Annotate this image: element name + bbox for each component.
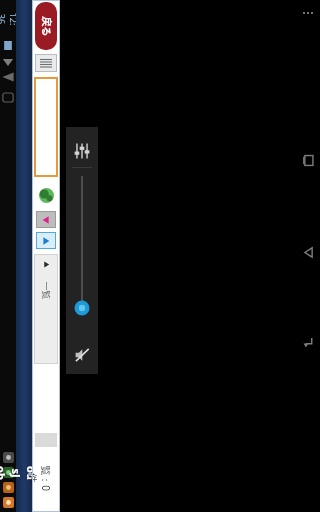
staticText: 12:36 [0, 11, 20, 27]
button[interactable]: Recent apps [296, 148, 320, 172]
button[interactable]: Home [296, 330, 320, 354]
button[interactable]: GoodsJob [16, 0, 32, 512]
button[interactable]: Navigate [36, 232, 56, 249]
staticText: GoodsJob [0, 465, 54, 481]
button[interactable] [66, 168, 98, 342]
button[interactable]: Tune [70, 139, 94, 163]
staticText: 戻る [40, 16, 53, 37]
staticText: 一覧 [40, 281, 51, 299]
button[interactable]: 戻る [35, 2, 57, 50]
staticText: 一覧：0件 [26, 464, 66, 492]
button[interactable]: Mute [69, 342, 95, 368]
button[interactable] [34, 77, 58, 177]
button[interactable]: Back [296, 240, 320, 264]
button[interactable]: 一覧 [34, 254, 58, 364]
button[interactable]: Navigate [36, 211, 56, 228]
button[interactable]: Browser [32, 185, 60, 205]
button[interactable]: Keyboard [35, 54, 57, 72]
